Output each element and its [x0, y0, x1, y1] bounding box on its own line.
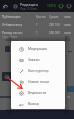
staticText: 1 — [36, 31, 38, 35]
staticText: Отбивка веса — [2, 23, 23, 27]
button[interactable]: Отбивка веса — [0, 21, 74, 29]
button[interactable]: Sync status — [57, 2, 65, 10]
staticText: 280 100 — [49, 23, 60, 27]
button[interactable]: Выход — [11, 98, 65, 109]
staticText: Кол-во — [36, 15, 46, 19]
staticText: Расход на сто — [2, 31, 23, 35]
button[interactable]: Заказы — [11, 54, 65, 65]
button[interactable]: Camera — [2, 72, 11, 81]
staticText: aa — [67, 95, 70, 99]
staticText: 100 % — [47, 4, 56, 8]
staticText: Сумма — [49, 15, 59, 19]
staticText: 280 000 — [49, 31, 60, 35]
button[interactable]: Ведомости — [11, 87, 65, 98]
staticText: Новые точки — [28, 79, 50, 84]
staticText: Заказы — [28, 57, 40, 62]
button[interactable]: Модерация — [11, 43, 65, 54]
button[interactable]: Конструктор — [11, 65, 65, 76]
button[interactable]: Back — [1, 2, 9, 10]
staticText: Конструктор — [28, 68, 49, 73]
button[interactable]: Публикации — [0, 13, 74, 21]
staticText: 1 — [36, 23, 38, 27]
staticText: Служебная — [2, 35, 18, 39]
staticText: Редакция #10338 — [20, 2, 47, 7]
button[interactable]: Расход на сто — [0, 29, 74, 37]
staticText: Выход — [28, 101, 39, 106]
button[interactable]: Project — [11, 2, 19, 10]
staticText: Модерация — [28, 46, 48, 51]
button[interactable]: Новые точки — [11, 76, 65, 87]
staticText: Публикации — [2, 15, 21, 19]
button[interactable]: Refresh — [65, 2, 73, 10]
staticText: Ведомости — [28, 90, 47, 95]
staticText: Ред · 0.0 км — [20, 7, 37, 11]
